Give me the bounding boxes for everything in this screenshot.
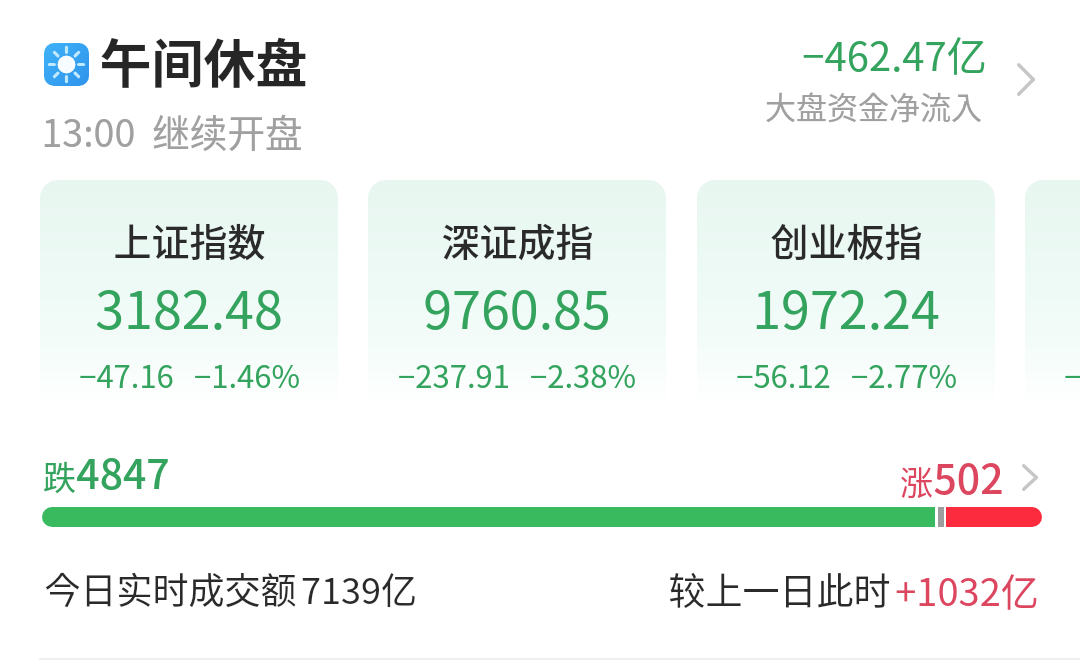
staticText: −12.34	[1064, 352, 1080, 397]
staticText: −56.12	[736, 352, 831, 397]
staticText: −2.38%	[530, 352, 636, 397]
staticText: 创业板指	[770, 212, 923, 267]
staticText: −462.47亿	[802, 25, 987, 83]
staticText: 今日实时成交额	[44, 562, 297, 614]
staticText: −1.46%	[194, 352, 300, 397]
button[interactable]: 跌	[43, 441, 170, 500]
button[interactable]: 深证成指	[368, 180, 666, 420]
staticText: 跌	[43, 452, 76, 500]
button[interactable]: 涨	[900, 446, 1039, 505]
staticText: 13:00 继续开盘	[41, 103, 303, 157]
button[interactable]: 上证指数	[40, 180, 338, 420]
staticText: 7139亿	[301, 562, 417, 614]
staticText: 深证成指	[441, 212, 594, 267]
button[interactable]: 午间休盘	[39, 23, 308, 98]
staticText: 上证指数	[113, 212, 266, 267]
staticText: 1972.24	[752, 269, 940, 344]
staticText: 较上一日此时	[664, 562, 895, 616]
staticText: 涨	[900, 457, 933, 505]
staticText: 502	[933, 446, 1004, 505]
button[interactable]: 创业板指	[697, 180, 995, 420]
staticText: 9760.85	[423, 269, 611, 344]
other: 查看大盘资金	[1017, 63, 1035, 96]
staticText: 午间休盘	[99, 23, 308, 98]
button[interactable]	[42, 507, 1042, 527]
staticText: −2.77%	[851, 352, 957, 397]
staticText: 3182.48	[95, 269, 283, 344]
staticText: 大盘资金净流入	[765, 83, 982, 128]
staticText: −47.16	[79, 352, 174, 397]
button[interactable]: −462.47亿	[770, 25, 1035, 128]
staticText: 4847	[76, 441, 170, 500]
staticText: −237.91	[398, 352, 510, 397]
button[interactable]: 科创50	[1025, 180, 1080, 420]
staticText: +1032亿	[895, 562, 1039, 617]
other: 涨跌详情	[1022, 464, 1038, 491]
